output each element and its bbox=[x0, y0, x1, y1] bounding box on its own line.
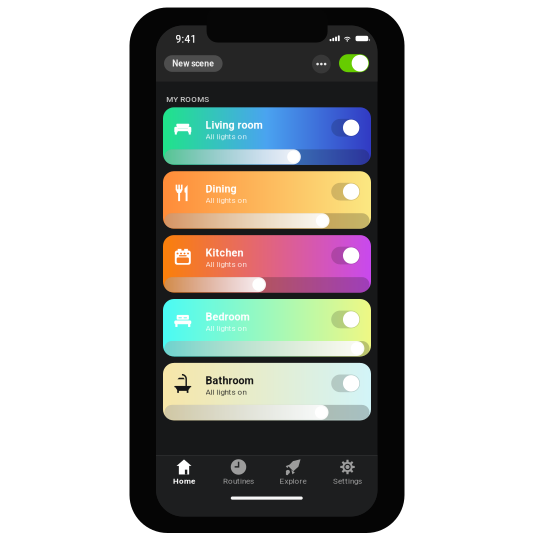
staticText: All lights on bbox=[205, 387, 246, 397]
button[interactable]: Settings bbox=[320, 458, 375, 486]
staticText: MY ROOMS bbox=[166, 94, 209, 104]
button[interactable]: Dining bbox=[163, 171, 371, 229]
button[interactable]: Bathroom bbox=[163, 363, 371, 420]
staticText: All lights on bbox=[205, 196, 246, 205]
button[interactable]: Bedroom bbox=[163, 299, 371, 356]
staticText: Settings bbox=[333, 476, 362, 486]
staticText: Bedroom bbox=[205, 310, 249, 323]
button[interactable]: Home bbox=[157, 458, 211, 486]
button[interactable]: Explore bbox=[266, 458, 320, 486]
button[interactable]: More options bbox=[312, 55, 331, 73]
button[interactable]: Living room bbox=[163, 107, 371, 165]
staticText: Kitchen bbox=[205, 247, 243, 259]
staticText: Dining bbox=[205, 183, 236, 195]
button[interactable]: All lights bbox=[339, 54, 369, 72]
button[interactable]: Routines bbox=[211, 458, 266, 486]
staticText: All lights on bbox=[205, 323, 246, 333]
staticText: Routines bbox=[223, 476, 254, 486]
staticText: New scene bbox=[172, 58, 214, 68]
staticText: 9:41 bbox=[175, 33, 196, 45]
button[interactable]: New scene bbox=[164, 55, 223, 72]
button[interactable]: Kitchen bbox=[163, 235, 371, 293]
staticText: Explore bbox=[279, 476, 306, 486]
staticText: Home bbox=[173, 476, 195, 486]
staticText: Living room bbox=[205, 119, 262, 131]
staticText: Bathroom bbox=[205, 374, 253, 387]
staticText: All lights on bbox=[205, 260, 246, 269]
staticText: All lights on bbox=[205, 132, 246, 141]
